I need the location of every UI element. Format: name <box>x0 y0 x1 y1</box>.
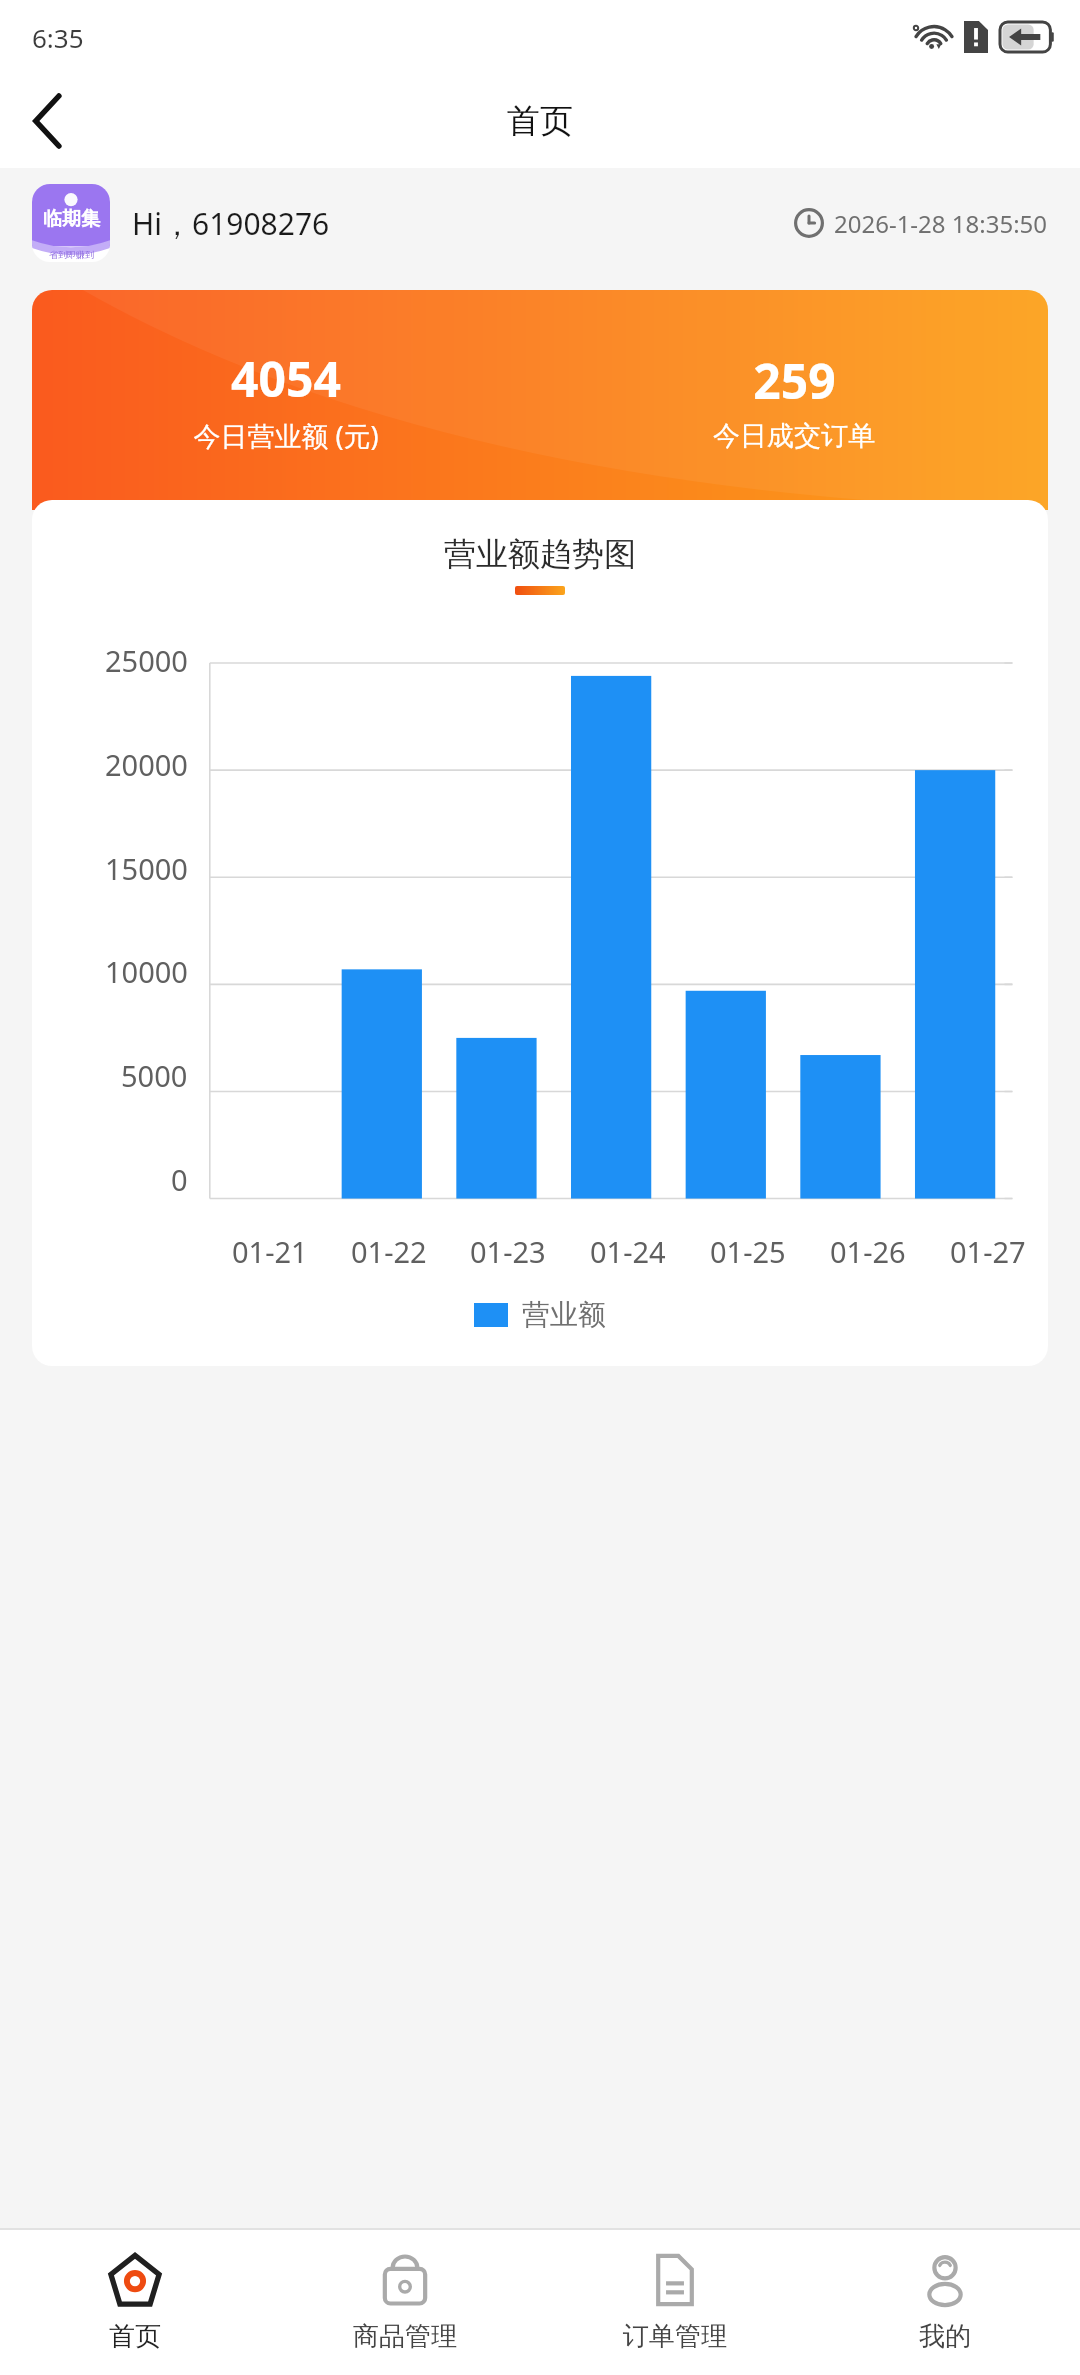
staticText: 2026-1-28 18:35:50 <box>834 207 1048 240</box>
staticText: 01-22 <box>351 1232 427 1271</box>
button[interactable]: Back <box>0 74 96 168</box>
staticText: 订单管理 <box>623 2320 727 2353</box>
button[interactable]: 我的 <box>810 2230 1080 2375</box>
staticText: 6:35 <box>32 20 84 55</box>
staticText: 10000 <box>105 952 188 991</box>
staticText: Hi，61908276 <box>132 203 330 244</box>
staticText: 今日营业额 (元) <box>193 417 379 454</box>
staticText: 25000 <box>105 641 188 680</box>
staticText: 省到即赚到 <box>49 249 94 260</box>
staticText: 首页 <box>507 100 573 142</box>
staticText: 5000 <box>121 1056 188 1095</box>
staticText: 0 <box>171 1160 188 1199</box>
staticText: 01-24 <box>590 1232 666 1271</box>
staticText: 营业额趋势图 <box>444 534 636 574</box>
staticText: 01-27 <box>950 1232 1026 1271</box>
staticText: 今日成交订单 <box>713 419 875 453</box>
staticText: 01-23 <box>470 1232 546 1271</box>
staticText: 01-26 <box>830 1232 906 1271</box>
staticText: 商品管理 <box>353 2320 457 2353</box>
staticText: 01-21 <box>232 1232 308 1271</box>
staticText: 15000 <box>105 849 188 888</box>
staticText: 20000 <box>105 745 188 784</box>
staticText: 营业额 <box>522 1297 606 1332</box>
button[interactable]: 首页 <box>0 2230 270 2375</box>
staticText: 首页 <box>109 2320 161 2353</box>
staticText: 临期集 <box>43 207 100 231</box>
staticText: 我的 <box>919 2320 971 2353</box>
staticText: 259 <box>753 348 836 413</box>
button[interactable]: 商品管理 <box>270 2230 540 2375</box>
staticText: 01-25 <box>710 1232 786 1271</box>
staticText: 4054 <box>231 346 341 411</box>
button[interactable]: 订单管理 <box>540 2230 810 2375</box>
